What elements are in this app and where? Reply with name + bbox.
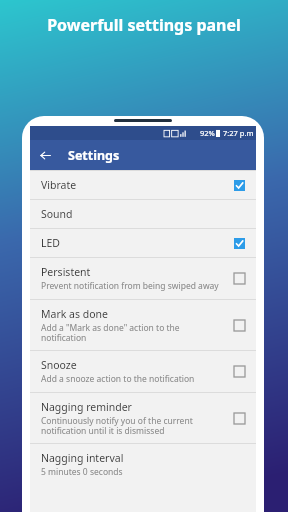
staticText: Add a snooze action to the notification (41, 373, 195, 385)
staticText: 7:27 p.m (223, 128, 254, 138)
button[interactable]: Back (30, 140, 60, 170)
staticText: 5 minutes 0 seconds (41, 466, 123, 478)
staticText: 92% (200, 128, 215, 138)
staticText: Powerfull settings panel (0, 14, 288, 36)
button[interactable]: Nagging reminder (30, 393, 256, 443)
staticText: Continuously notify you of the current n… (41, 415, 193, 436)
button[interactable]: LED (30, 229, 256, 257)
button[interactable]: Nagging interval (30, 444, 256, 485)
staticText: Nagging interval (41, 451, 124, 465)
staticText: Settings (68, 147, 120, 164)
button[interactable]: Sound (30, 200, 256, 228)
staticText: Mark as done (41, 307, 108, 321)
staticText: Add a "Mark as done" action to the notif… (41, 322, 180, 343)
button[interactable]: Snooze (30, 351, 256, 392)
button[interactable]: Vibrate (30, 171, 256, 199)
staticText: Prevent notification from being swiped a… (41, 280, 219, 292)
button[interactable]: Mark as done (30, 300, 256, 350)
staticText: LED (41, 236, 61, 250)
staticText: Nagging reminder (41, 400, 132, 414)
staticText: Snooze (41, 358, 77, 372)
staticText: Sound (41, 207, 73, 221)
staticText: Vibrate (41, 178, 77, 192)
staticText: Persistent (41, 265, 91, 279)
button[interactable]: Persistent (30, 258, 256, 299)
